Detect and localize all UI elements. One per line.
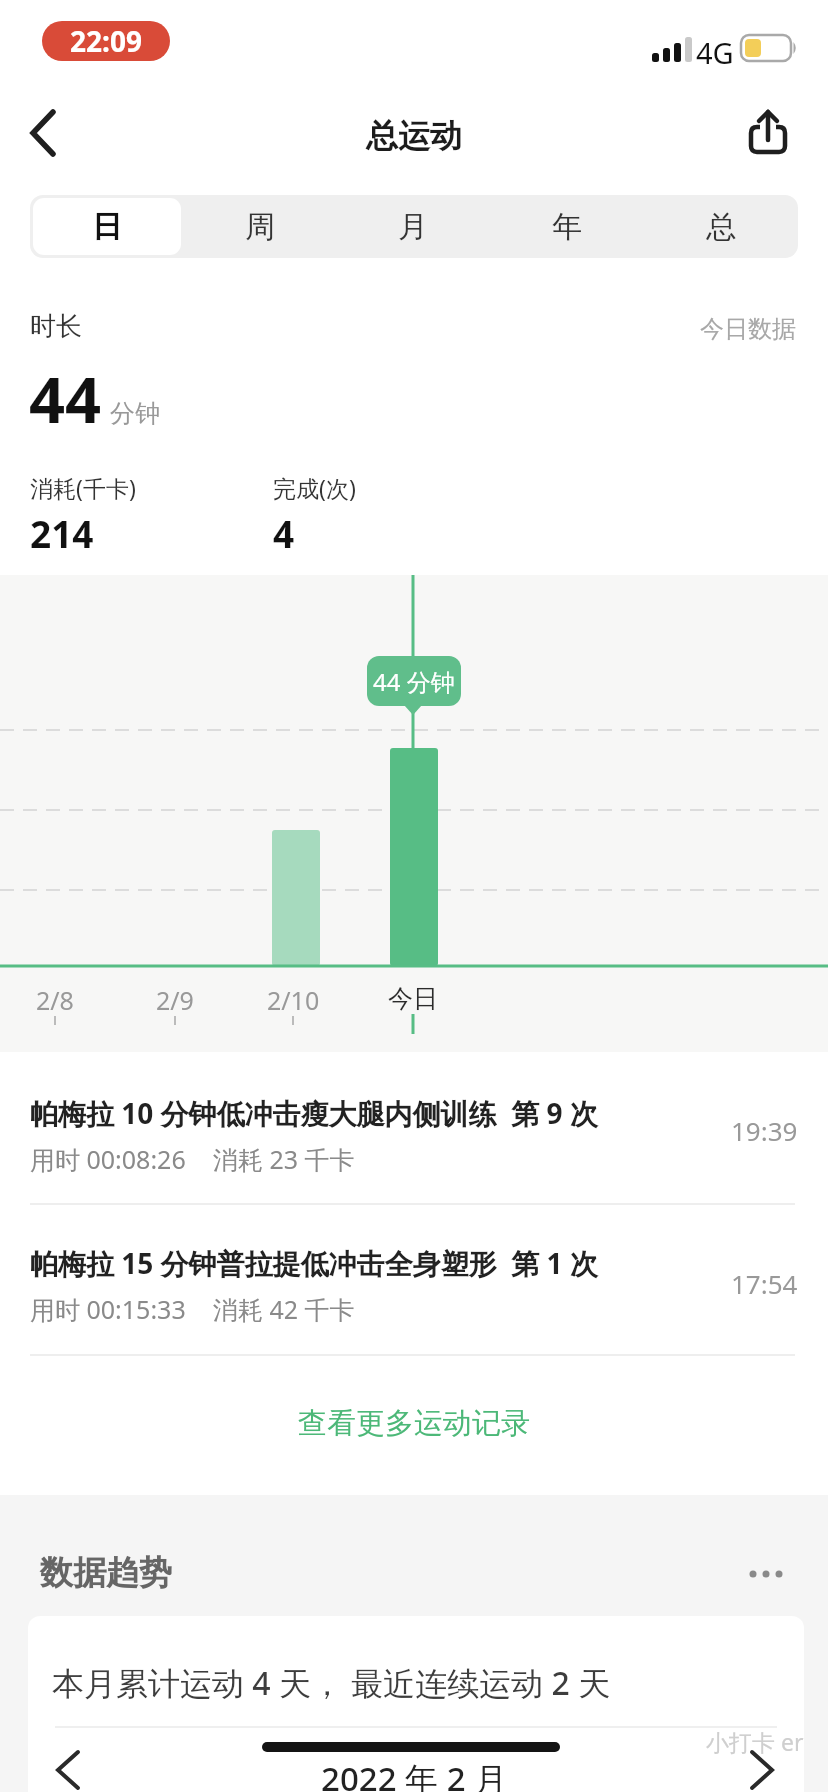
staticText: 总运动 — [366, 116, 462, 156]
staticText: 2/9 — [156, 983, 194, 1017]
staticText: 4 — [273, 508, 295, 558]
staticText: 44 分钟 — [373, 665, 455, 698]
button[interactable] — [736, 1744, 792, 1792]
staticText: 17:54 — [731, 1266, 798, 1301]
staticText: 完成(次) — [273, 472, 356, 503]
button[interactable] — [28, 1616, 804, 1792]
button[interactable]: 年 — [490, 195, 644, 258]
staticText: 214 — [30, 508, 94, 558]
staticText: 数据趋势 — [40, 1552, 172, 1594]
staticText: 19:39 — [731, 1113, 798, 1148]
staticText: 今日 — [388, 983, 438, 1014]
staticText: 22:09 — [70, 22, 142, 60]
button[interactable]: 帕梅拉 10 分钟低冲击瘦大腿内侧训练 第 9 次 — [0, 1072, 828, 1204]
staticText: 查看更多运动记录 — [298, 1405, 530, 1442]
button[interactable] — [735, 1556, 795, 1592]
staticText: 用时 00:15:33 — [30, 1292, 186, 1326]
staticText: 年 — [552, 208, 582, 246]
button[interactable]: 帕梅拉 15 分钟普拉提低冲击全身塑形 第 1 次 — [0, 1204, 828, 1355]
staticText: 4G — [696, 33, 734, 72]
staticText: 帕梅拉 15 分钟普拉提低冲击全身塑形 第 1 次 — [30, 1244, 598, 1282]
staticText: 2022 年 2 月 — [321, 1756, 508, 1792]
staticText: 时长 — [30, 310, 82, 343]
button[interactable] — [42, 1744, 98, 1792]
staticText: 周 — [245, 208, 275, 246]
staticText: 本月累计运动 4 天， 最近连续运动 2 天 — [52, 1661, 611, 1705]
button[interactable] — [20, 100, 80, 166]
button[interactable]: 日 — [30, 195, 183, 258]
staticText: 日 — [92, 208, 122, 246]
staticText: 小打卡 er — [706, 1726, 804, 1757]
staticText: 2/8 — [36, 983, 74, 1017]
staticText: 今日数据 — [700, 314, 796, 344]
button[interactable]: 周 — [183, 195, 336, 258]
staticText: 分钟 — [110, 398, 160, 429]
button[interactable] — [740, 100, 806, 166]
staticText: 2/10 — [267, 983, 320, 1017]
staticText: 消耗(千卡) — [30, 472, 136, 503]
staticText: 帕梅拉 10 分钟低冲击瘦大腿内侧训练 第 9 次 — [30, 1094, 598, 1132]
staticText: 总 — [706, 208, 736, 246]
staticText: 消耗 42 千卡 — [213, 1292, 355, 1326]
staticText: 月 — [398, 208, 428, 246]
staticText: 消耗 23 千卡 — [213, 1142, 355, 1176]
button[interactable]: 月 — [336, 195, 490, 258]
button[interactable]: 总 — [644, 195, 798, 258]
staticText: 44 — [29, 356, 102, 442]
button[interactable]: 查看更多运动记录 — [0, 1398, 828, 1448]
staticText: 用时 00:08:26 — [30, 1142, 186, 1176]
